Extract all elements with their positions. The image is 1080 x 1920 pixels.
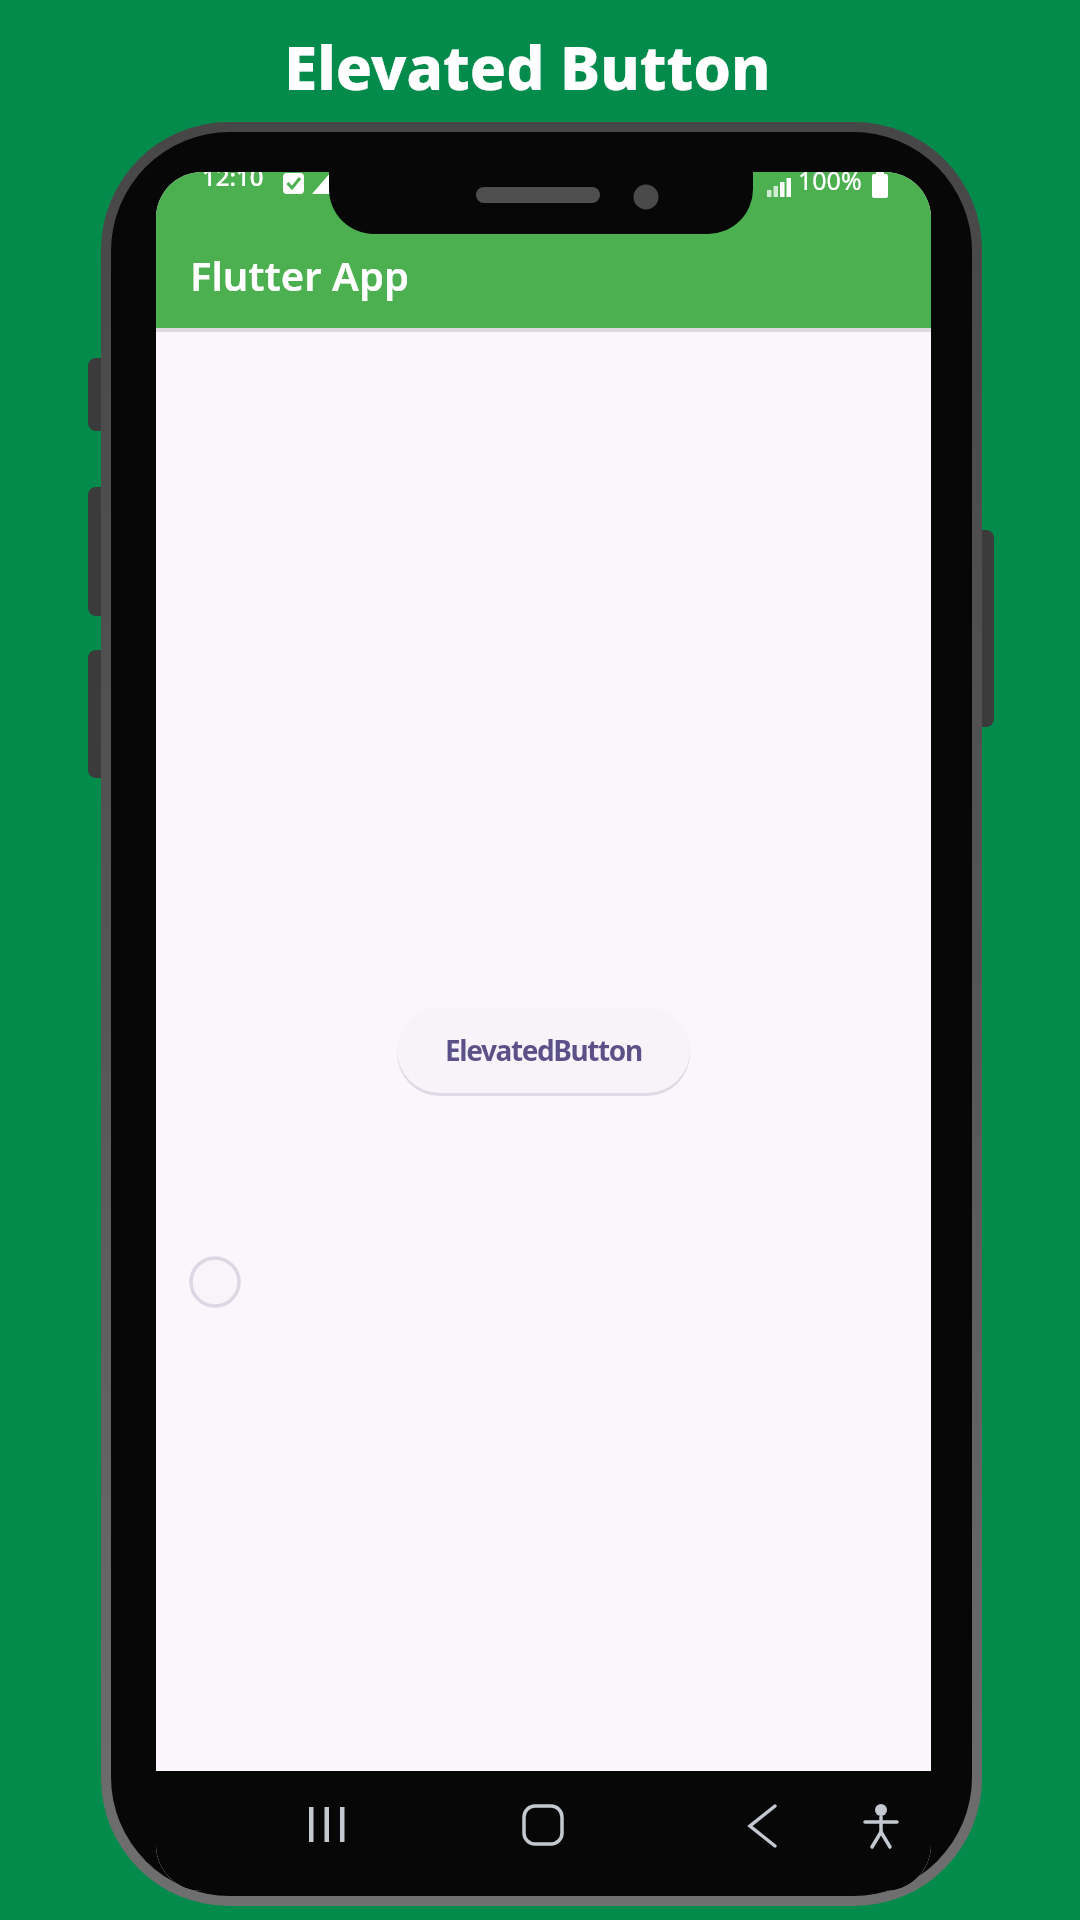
staticText: ElevatedButton bbox=[445, 1031, 642, 1069]
staticText: Flutter App bbox=[190, 248, 409, 302]
staticText: 12:10 bbox=[202, 172, 264, 193]
button[interactable] bbox=[291, 1791, 371, 1871]
button[interactable] bbox=[722, 1791, 802, 1871]
button[interactable] bbox=[503, 1791, 583, 1871]
button[interactable] bbox=[841, 1791, 921, 1871]
staticText: Elevated Button bbox=[284, 26, 771, 108]
button[interactable]: ElevatedButton bbox=[397, 1007, 690, 1093]
staticText: 100% bbox=[798, 172, 862, 197]
